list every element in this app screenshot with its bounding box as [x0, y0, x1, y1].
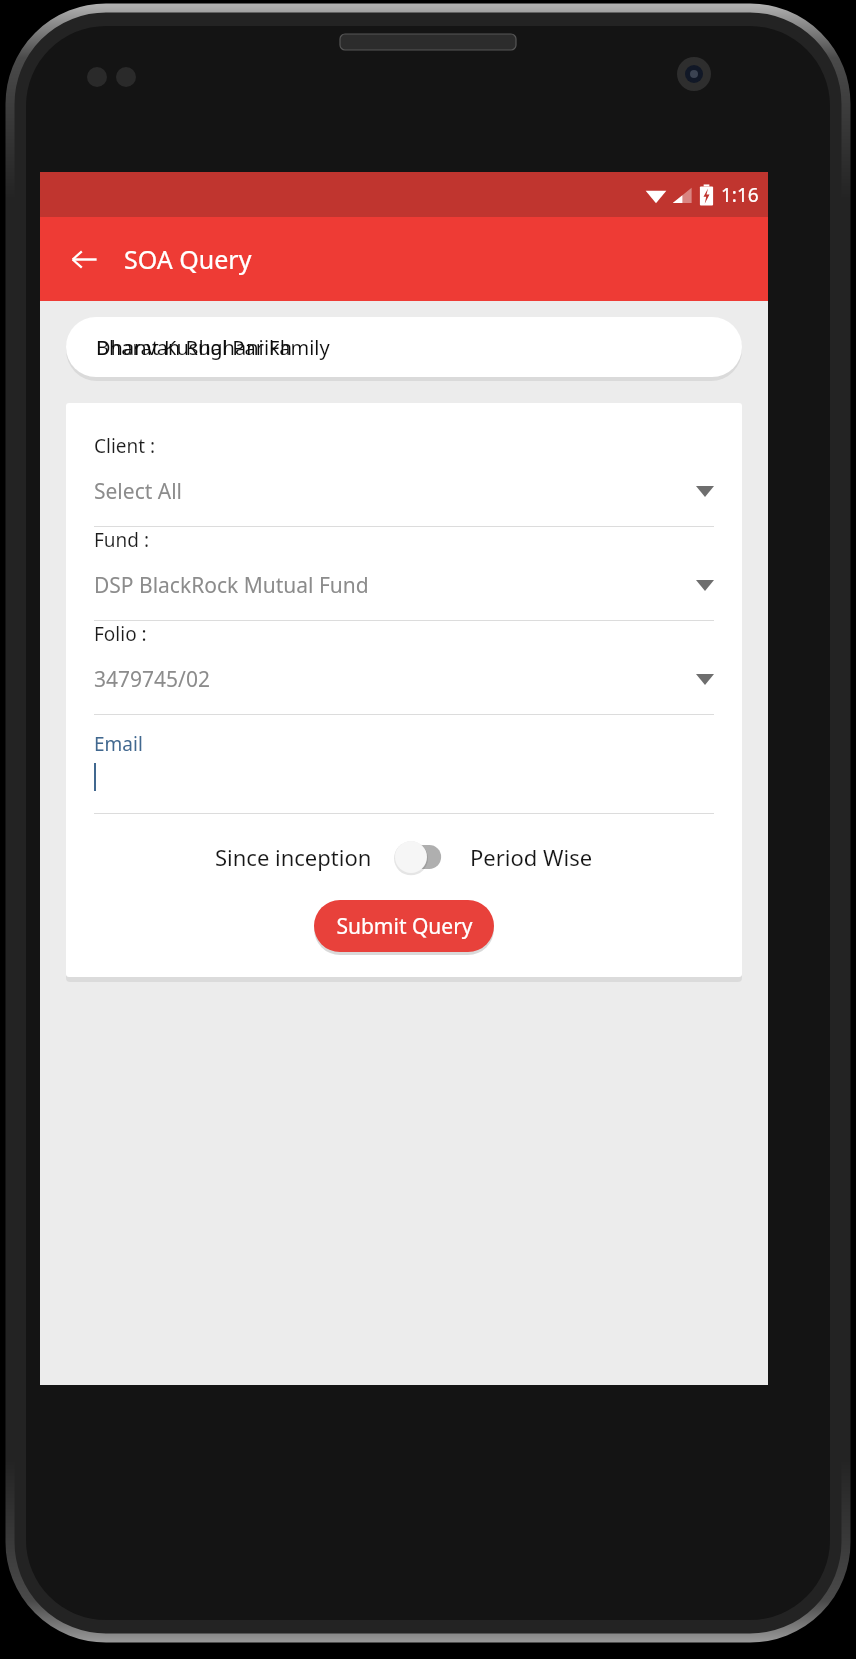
- button[interactable]: Toggle period mode: [394, 840, 448, 874]
- staticText: Email: [94, 731, 143, 757]
- button[interactable]: Back: [58, 233, 110, 285]
- button[interactable]: Fund :: [66, 527, 742, 621]
- staticText: 3479745/02: [94, 665, 696, 694]
- staticText: DSP BlackRock Mutual Fund: [94, 571, 696, 600]
- staticText: Submit Query: [336, 912, 473, 941]
- staticText: Select All: [94, 477, 696, 506]
- button[interactable]: Folio :: [66, 621, 742, 715]
- staticText: Client :: [94, 433, 156, 459]
- button[interactable]: Client :: [66, 433, 742, 527]
- button[interactable]: Dhanvan Rughani Family: [66, 317, 742, 377]
- staticText: 1:16: [721, 182, 759, 208]
- staticText: Fund :: [94, 527, 150, 553]
- staticText: Dhanvan Rughani Family: [96, 334, 330, 361]
- button[interactable]: Email: [66, 715, 742, 814]
- staticText: Folio :: [94, 621, 147, 647]
- staticText: Period Wise: [470, 842, 593, 872]
- button[interactable]: Submit Query: [314, 900, 494, 952]
- staticText: SOA Query: [124, 242, 252, 276]
- staticText: Since inception: [215, 842, 372, 872]
- staticText: Bharat Kushal Parikh: [96, 334, 293, 361]
